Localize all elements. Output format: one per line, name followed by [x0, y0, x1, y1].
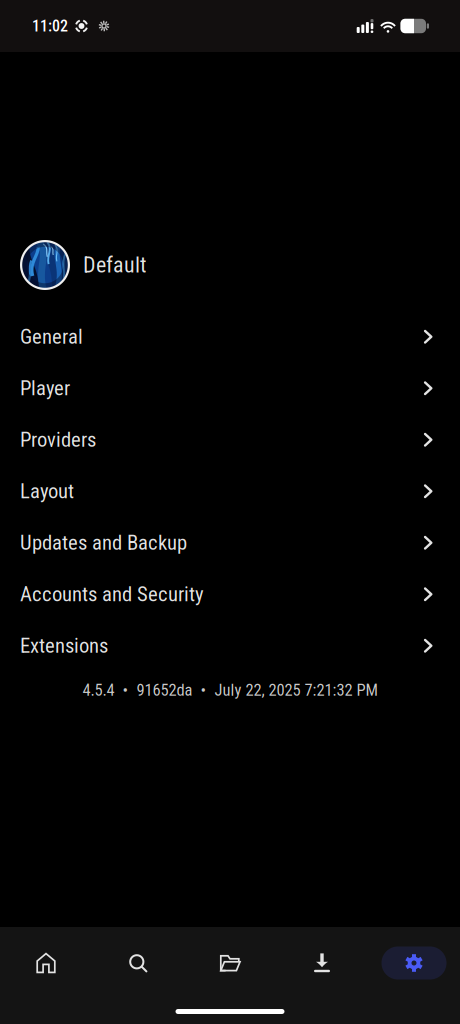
- staticText: 11:02: [32, 17, 68, 35]
- button[interactable]: General: [0, 311, 460, 362]
- staticText: Accounts and Security: [20, 582, 204, 606]
- button[interactable]: Home: [0, 936, 92, 990]
- staticText: Player: [20, 376, 70, 400]
- button[interactable]: Updates and Backup: [0, 517, 460, 568]
- staticText: 4.5.4 • 91652da • July 22, 2025 7:21:32 …: [82, 680, 377, 700]
- staticText: Extensions: [20, 634, 108, 658]
- button[interactable]: Library: [184, 936, 276, 990]
- button[interactable]: Providers: [0, 414, 460, 465]
- staticText: Updates and Backup: [20, 531, 187, 555]
- button[interactable]: Extensions: [0, 620, 460, 671]
- button[interactable]: Settings: [368, 936, 460, 990]
- staticText: Layout: [20, 479, 74, 503]
- staticText: Providers: [20, 428, 96, 452]
- button[interactable]: Layout: [0, 465, 460, 517]
- staticText: General: [20, 325, 83, 349]
- staticText: Default: [83, 252, 147, 278]
- button[interactable]: Accounts and Security: [0, 568, 460, 620]
- button[interactable]: Downloads: [276, 936, 368, 990]
- button[interactable]: Player: [0, 362, 460, 414]
- button[interactable]: Search: [92, 936, 184, 990]
